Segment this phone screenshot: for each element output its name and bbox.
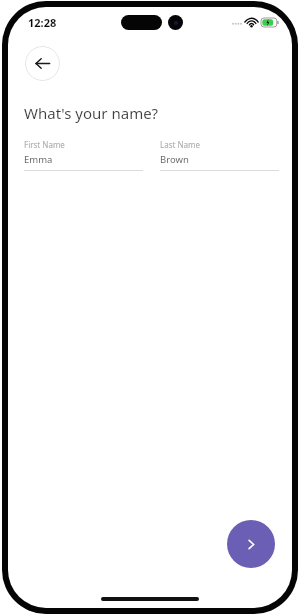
staticText: Brown [160, 153, 189, 166]
staticText: Last Name [160, 139, 201, 150]
button[interactable]: First Name [24, 139, 143, 171]
staticText: First Name [24, 139, 65, 150]
button[interactable]: Last Name [160, 139, 279, 171]
staticText: Emma [24, 153, 53, 166]
button[interactable]: Back [25, 46, 60, 81]
staticText: What's your name? [24, 103, 159, 123]
button[interactable]: Next [227, 520, 275, 568]
staticText: 12:28 [28, 15, 57, 30]
